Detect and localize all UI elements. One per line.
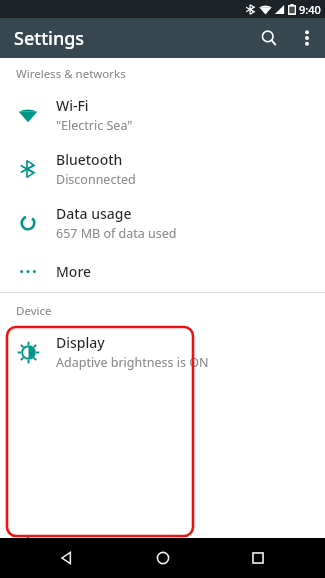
button[interactable]: Back [39, 538, 95, 578]
button[interactable]: Display [0, 325, 325, 379]
button[interactable]: More [0, 250, 325, 292]
staticText: Adaptive brightness is ON [56, 354, 209, 371]
staticText: Device [16, 303, 52, 319]
staticText: Disconnected [56, 171, 136, 188]
button[interactable]: Search [249, 18, 289, 58]
staticText: 657 MB of data used [56, 225, 177, 242]
staticText: Display [56, 333, 105, 352]
staticText: Settings [14, 26, 85, 51]
staticText: Data usage [56, 204, 132, 223]
button[interactable]: Data usage [0, 196, 325, 250]
button[interactable]: Recent apps [230, 538, 286, 578]
staticText: "Electric Sea" [56, 117, 133, 134]
staticText: Wi-Fi [56, 96, 89, 115]
button[interactable]: Home [135, 538, 191, 578]
button[interactable]: Wi-Fi [0, 88, 325, 142]
staticText: Bluetooth [56, 150, 123, 169]
staticText: Wireless & networks [16, 66, 126, 82]
button[interactable]: Bluetooth [0, 142, 325, 196]
staticText: 9:40 [299, 2, 321, 17]
staticText: More [56, 262, 92, 281]
button[interactable]: More options [289, 20, 325, 56]
